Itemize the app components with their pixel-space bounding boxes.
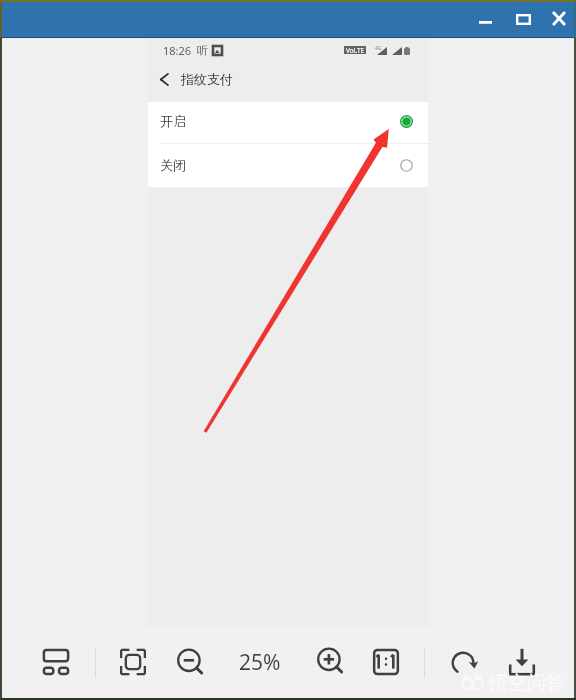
staticText: 听	[197, 43, 208, 57]
button[interactable]: Layout	[38, 644, 74, 680]
button[interactable]: 开启	[148, 102, 428, 143]
button[interactable]: Actual size	[368, 644, 404, 680]
staticText: 悟空问答	[489, 671, 565, 695]
button[interactable]: Rotate	[445, 645, 481, 681]
button[interactable]: 关闭	[148, 143, 428, 187]
button[interactable]: Zoom out	[172, 644, 208, 680]
staticText: 开启	[160, 113, 186, 129]
staticText: 关闭	[160, 157, 186, 173]
button[interactable]: Maximize	[503, 2, 543, 37]
button[interactable]: Fit to screen	[115, 644, 151, 680]
button[interactable]: Download	[504, 644, 540, 680]
staticText: 指纹支付	[181, 71, 233, 87]
button[interactable]: 25%	[230, 648, 290, 676]
staticText: 25%	[239, 648, 281, 676]
staticText: VoLTE	[346, 46, 365, 54]
button[interactable]: Close	[539, 1, 576, 36]
staticText: 4G	[375, 45, 382, 52]
button[interactable]: Back	[150, 59, 178, 99]
staticText: 18:26	[163, 43, 192, 58]
button[interactable]: Minimize	[465, 1, 505, 36]
button[interactable]: Zoom in	[312, 643, 348, 679]
